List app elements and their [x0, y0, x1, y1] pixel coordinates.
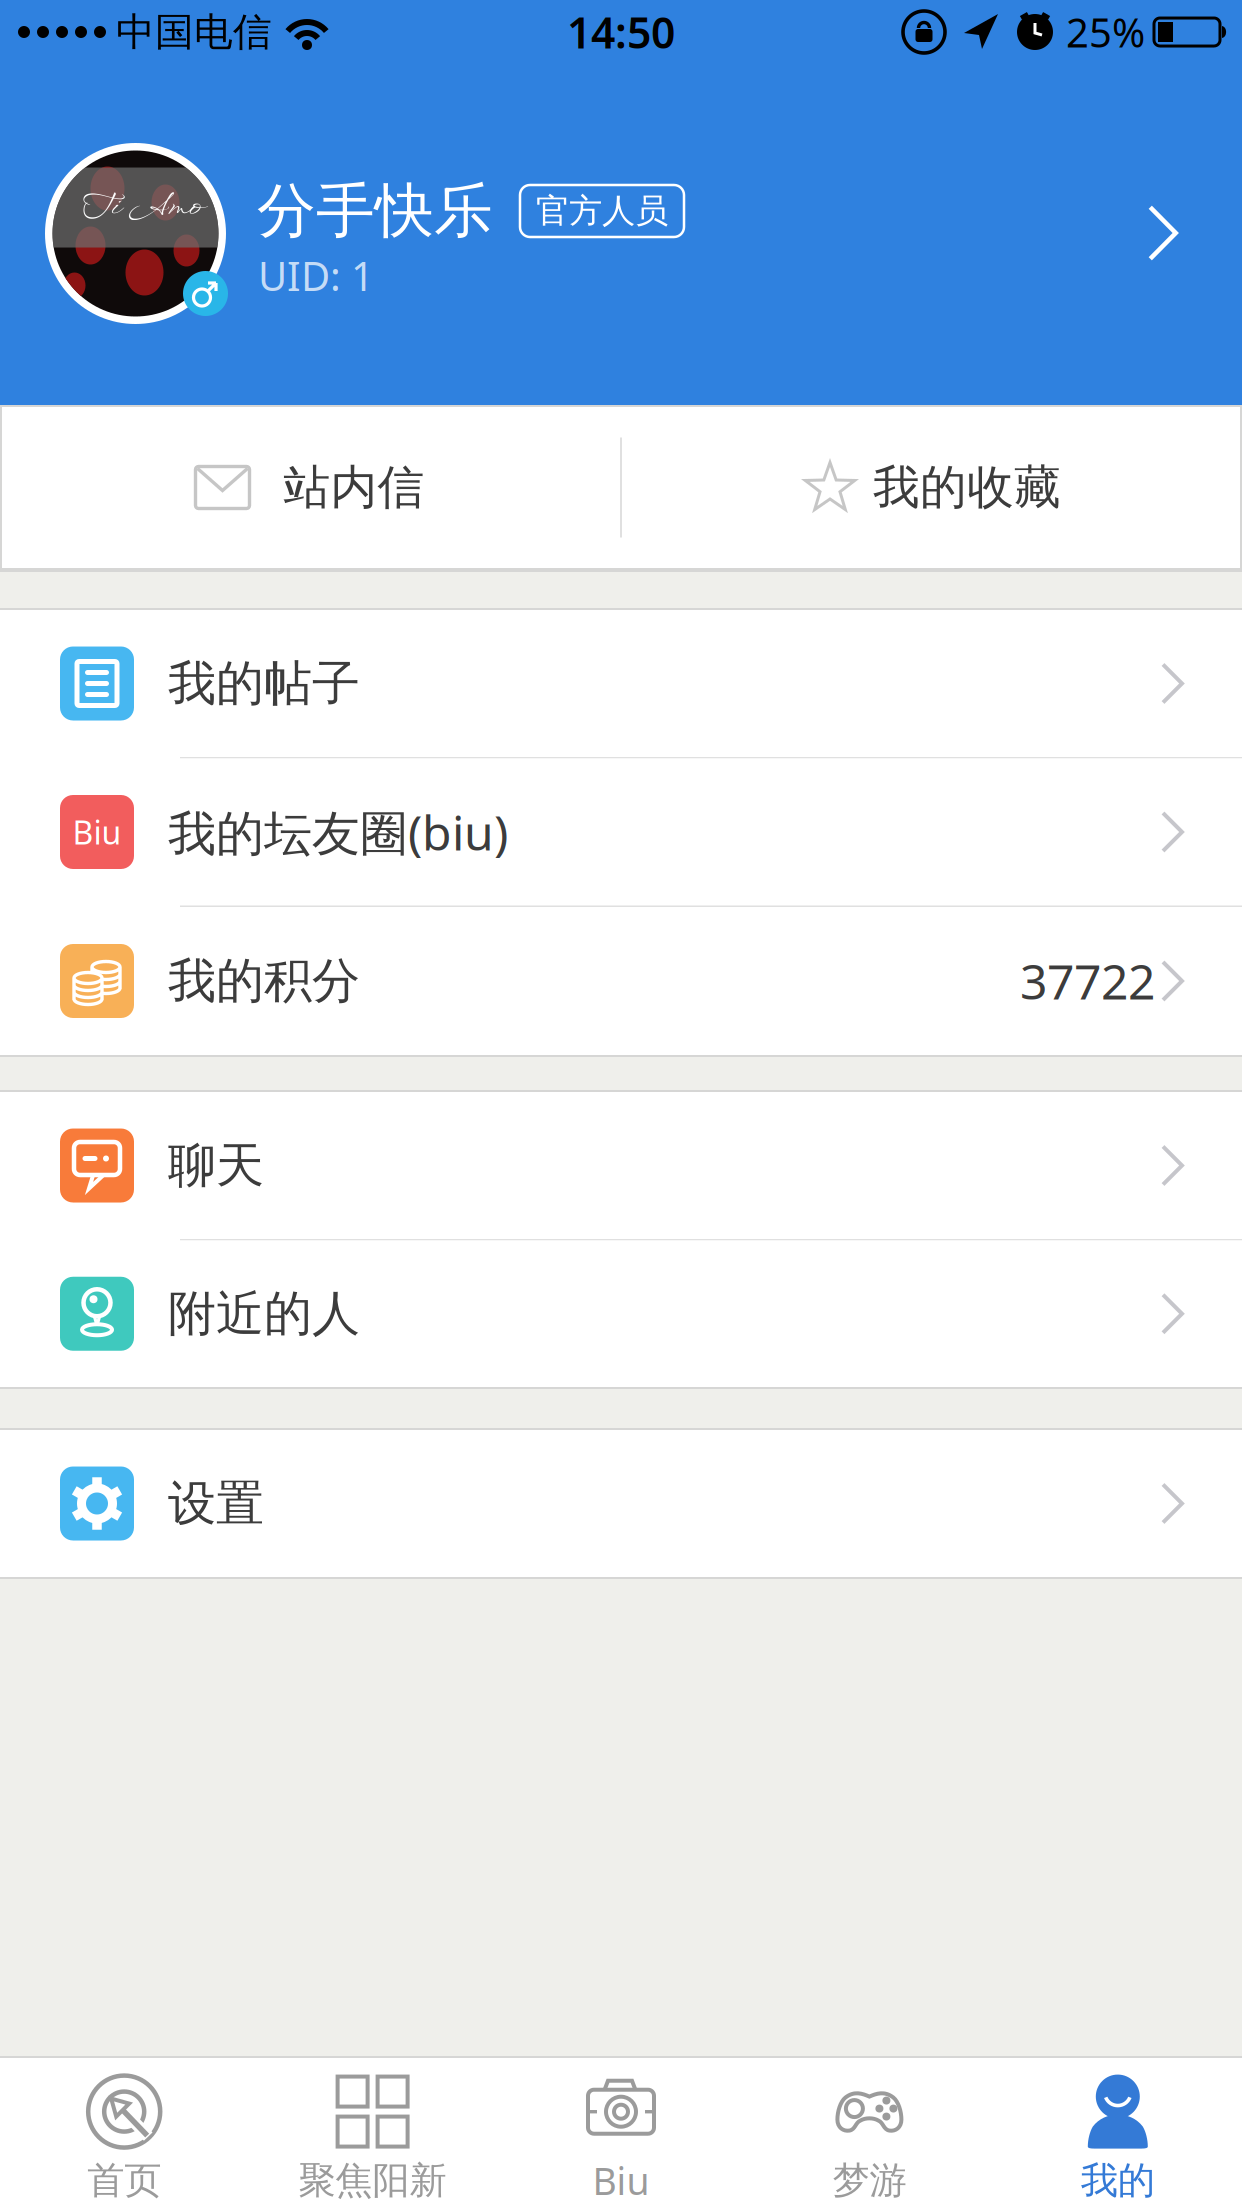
staticText: 14:50 [567, 4, 675, 60]
staticText: UID: 1 [258, 249, 374, 302]
staticText: Biu [72, 811, 121, 853]
staticText: 分手快乐 [257, 175, 493, 247]
button[interactable]: 设置 [0, 1430, 1242, 1577]
button[interactable]: 个人资料 [0, 143, 1242, 405]
staticText: 我的收藏 [873, 459, 1061, 516]
staticText: 聚焦阳新 [299, 2158, 447, 2203]
staticText: Biu [592, 2156, 649, 2205]
button[interactable]: 我的帖子 [0, 610, 1242, 757]
button[interactable]: 梦游 [745, 2058, 994, 2208]
button[interactable]: 聚焦阳新 [248, 2058, 497, 2208]
button[interactable]: 我的 [994, 2058, 1242, 2208]
button[interactable]: 附近的人 [0, 1240, 1242, 1387]
staticText: 我的 [1081, 2158, 1155, 2203]
staticText: 附近的人 [168, 1284, 360, 1343]
button[interactable]: Biu [0, 758, 1242, 905]
staticText: 站内信 [283, 459, 424, 516]
staticText: 官方人员 [536, 190, 668, 231]
button[interactable]: 首页 [0, 2058, 248, 2208]
button[interactable]: 聊天 [0, 1092, 1242, 1239]
button[interactable]: 站内信 [0, 407, 620, 568]
button[interactable]: Biu [497, 2058, 745, 2208]
staticText: 25% [1066, 5, 1145, 58]
button[interactable]: 我的积分 [0, 907, 1242, 1055]
staticText: 首页 [87, 2158, 161, 2203]
staticText: 中国电信 [116, 8, 272, 56]
staticText: 我的积分 [168, 951, 360, 1010]
button[interactable]: 我的收藏 [622, 407, 1242, 568]
staticText: 我的帖子 [168, 654, 360, 713]
staticText: 我的坛友圈(biu) [168, 800, 508, 864]
staticText: 设置 [168, 1474, 264, 1533]
staticText: 聊天 [168, 1136, 264, 1195]
staticText: Ti Amo [83, 186, 200, 229]
staticText: 37722 [1020, 949, 1155, 1013]
staticText: 梦游 [832, 2158, 906, 2203]
